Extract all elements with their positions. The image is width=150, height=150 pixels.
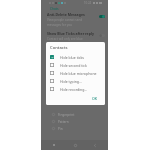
staticText: Chats: [50, 7, 59, 11]
button[interactable]: Recents: [47, 140, 61, 150]
button[interactable]: Home: [68, 140, 82, 150]
button[interactable]: Fingerprint: [41, 111, 108, 118]
button[interactable]: Hide blue microphone: [50, 69, 102, 77]
button[interactable]: Hide blue ticks: [50, 53, 102, 61]
staticText: Pin: [58, 127, 63, 131]
staticText: Contact will only see blue: [47, 37, 83, 41]
staticText: Hide typing...: [60, 79, 82, 84]
button[interactable]: Hide recording...: [50, 85, 102, 93]
staticText: Contacts: [50, 45, 68, 51]
button[interactable]: Anti-Delete Messages: [41, 12, 108, 27]
staticText: OK: [92, 96, 98, 101]
button[interactable]: Hide typing...: [50, 77, 102, 85]
staticText: Anti-Delete Messages: [47, 12, 85, 17]
staticText: Fingerprint: [58, 113, 75, 117]
staticText: View people cannot send: [47, 18, 83, 22]
staticText: Hide recording...: [60, 87, 88, 92]
staticText: Pattern: [58, 120, 69, 124]
staticText: Hide second tick: [60, 63, 87, 68]
staticText: Show Blue Ticks after reply: [47, 31, 94, 36]
staticText: 10:24: [84, 1, 92, 5]
button[interactable]: Pattern: [41, 118, 108, 125]
button[interactable]: Pin: [41, 125, 108, 132]
staticText: messages for you: [47, 23, 72, 27]
staticText: Hide blue microphone: [60, 71, 97, 76]
staticText: Hide blue ticks: [60, 55, 85, 60]
button[interactable]: Show Blue Ticks after reply: [41, 31, 108, 46]
button[interactable]: Hide second tick: [50, 61, 102, 69]
button[interactable]: OK: [89, 95, 102, 102]
